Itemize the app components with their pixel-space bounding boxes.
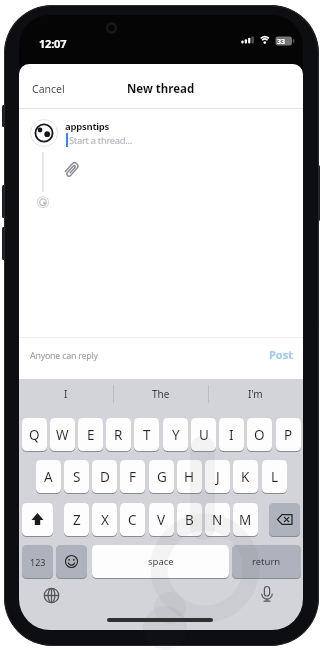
button[interactable]: 123 xyxy=(22,545,53,578)
staticText: return xyxy=(252,555,281,568)
staticText: J xyxy=(216,468,220,486)
staticText: Y xyxy=(172,426,180,444)
staticText: B xyxy=(185,511,194,529)
button[interactable]: Q xyxy=(22,418,47,451)
button[interactable]: Z xyxy=(64,503,89,536)
staticText: T xyxy=(143,426,151,444)
button[interactable] xyxy=(37,581,66,610)
button[interactable]: I xyxy=(19,379,113,409)
button[interactable] xyxy=(252,580,282,610)
staticText: W xyxy=(56,426,69,444)
button[interactable] xyxy=(22,503,53,536)
button[interactable]: Cancel xyxy=(32,82,65,96)
staticText: E xyxy=(87,426,95,444)
button[interactable]: B xyxy=(177,503,202,536)
button[interactable]: U xyxy=(191,418,216,451)
button[interactable]: P xyxy=(276,418,301,451)
staticText: O xyxy=(254,426,265,444)
staticText: C xyxy=(128,511,137,529)
staticText: 33 xyxy=(277,37,286,47)
button[interactable]: I'm xyxy=(208,379,303,409)
button[interactable]: D xyxy=(92,460,117,493)
button[interactable]: Post xyxy=(263,344,299,364)
button[interactable]: L xyxy=(262,460,287,493)
staticText: I'm xyxy=(248,387,263,401)
button[interactable]: T xyxy=(134,418,159,451)
button[interactable]: R xyxy=(106,418,131,451)
staticText: X xyxy=(101,511,109,529)
staticText: G xyxy=(157,468,167,486)
button[interactable]: space xyxy=(92,545,229,578)
button[interactable] xyxy=(65,130,255,150)
staticText: R xyxy=(114,426,123,444)
staticText: Start a thread... xyxy=(69,134,132,147)
staticText: K xyxy=(241,468,250,486)
staticText: S xyxy=(73,468,81,486)
staticText: 12:07 xyxy=(39,36,67,51)
staticText: N xyxy=(212,511,223,529)
button[interactable]: I xyxy=(219,418,244,451)
button[interactable]: The xyxy=(113,379,208,409)
button[interactable]: W xyxy=(50,418,75,451)
staticText: P xyxy=(284,426,293,444)
button[interactable]: K xyxy=(233,460,258,493)
button[interactable]: S xyxy=(64,460,89,493)
staticText: 123 xyxy=(30,556,46,568)
button[interactable]: M xyxy=(233,503,258,536)
staticText: Q xyxy=(29,426,40,444)
staticText: D xyxy=(100,468,110,486)
button[interactable]: Y xyxy=(163,418,188,451)
staticText: V xyxy=(157,511,166,529)
staticText: New thread xyxy=(127,81,195,97)
button[interactable]: X xyxy=(92,503,117,536)
button[interactable]: E xyxy=(78,418,103,451)
staticText: A xyxy=(44,468,53,486)
staticText: L xyxy=(271,468,279,486)
button[interactable]: J xyxy=(205,460,230,493)
staticText: appsntips xyxy=(65,120,110,133)
button[interactable]: return xyxy=(232,545,301,578)
staticText: H xyxy=(184,468,195,486)
button[interactable]: N xyxy=(205,503,230,536)
staticText: U xyxy=(199,426,209,444)
button[interactable]: C xyxy=(120,503,145,536)
staticText: Anyone can reply xyxy=(30,350,98,362)
button[interactable]: V xyxy=(149,503,174,536)
staticText: Z xyxy=(73,511,81,529)
button[interactable]: H xyxy=(177,460,202,493)
button[interactable]: O xyxy=(247,418,272,451)
staticText: I xyxy=(64,387,68,401)
staticText: M xyxy=(239,511,252,529)
button[interactable]: F xyxy=(120,460,145,493)
button[interactable] xyxy=(269,503,300,536)
staticText: space xyxy=(148,555,174,568)
button[interactable]: A xyxy=(36,460,61,493)
staticText: Post xyxy=(269,347,294,362)
staticText: I xyxy=(229,426,234,444)
button[interactable] xyxy=(56,545,87,578)
staticText: F xyxy=(129,468,137,486)
button[interactable]: G xyxy=(149,460,174,493)
staticText: The xyxy=(152,387,170,401)
